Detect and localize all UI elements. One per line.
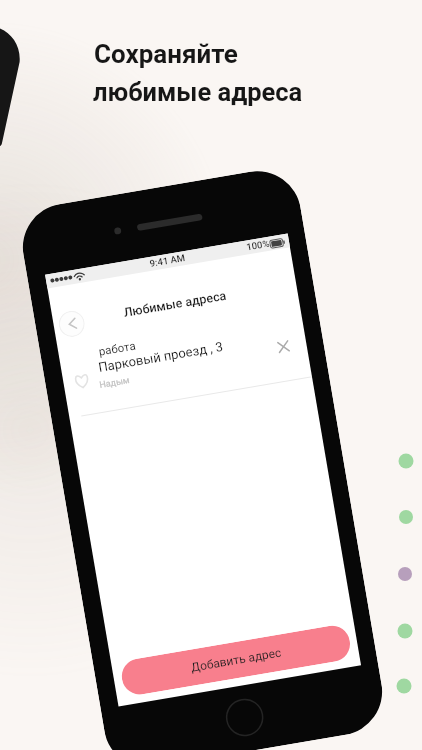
button[interactable]: Back [57,309,87,339]
staticText: 9:41 AM [149,252,186,269]
staticText: Любимые адреса [122,288,227,320]
staticText: Парковый проезд , 3 [97,339,225,375]
staticText: 100% [245,238,271,252]
staticText: Добавить адрес [190,645,283,675]
button[interactable]: Добавить адрес [119,623,353,697]
button[interactable] [57,304,310,407]
staticText: Сохраняйте [94,39,238,69]
staticText: работа [98,338,137,358]
staticText: любимые адреса [93,77,303,107]
staticText: Надым [99,375,131,391]
button[interactable]: Remove address [270,333,297,360]
